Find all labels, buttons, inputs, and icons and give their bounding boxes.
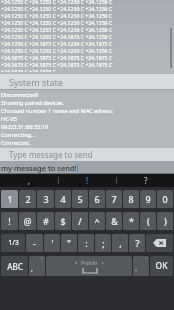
button[interactable]: 8 [123, 190, 139, 208]
button[interactable]: , [0, 174, 58, 187]
staticText: +24.1875 C +24.1875 C [1, 68, 56, 72]
staticText: $ [60, 215, 66, 227]
staticText: Showing paired devices. [1, 99, 65, 107]
staticText: Type message to send [9, 149, 93, 160]
button[interactable]: ; [95, 234, 111, 252]
staticText: 5 [77, 193, 83, 205]
button[interactable]: 4 [55, 190, 71, 208]
button[interactable]: 1 [1, 190, 18, 208]
staticText: 6 [94, 193, 100, 205]
button[interactable]: . [133, 256, 149, 276]
button[interactable]: OK [150, 256, 173, 276]
staticText: +24.1250 C +24.1250 C +24.1250 C +24.125… [1, 0, 113, 5]
button[interactable]: , [29, 256, 45, 276]
button[interactable]: ^ [89, 212, 105, 230]
button[interactable]: 0 [157, 190, 173, 208]
button[interactable]: ' [44, 234, 60, 252]
staticText: +24.1250 C +24.1250 C +24.1250 C +24.125… [1, 26, 113, 33]
staticText: ? [135, 237, 140, 249]
staticText: " [67, 237, 71, 249]
staticText: +24.1875 C +24.1875 C +24.1875 C +24.187… [1, 61, 113, 68]
button[interactable]: ? [117, 174, 174, 187]
staticText: & [111, 215, 118, 227]
staticText: +24.1250 C +24.1250 C +24.1250 C +24.125… [1, 12, 113, 19]
staticText: @ [23, 215, 32, 227]
staticText: Choosed number 1 name and MAC adress: [1, 107, 113, 115]
button[interactable]: - [26, 234, 43, 252]
staticText: , [31, 264, 33, 274]
staticText: +24.1250 C +24.1250 C +24.1250 C +24.125… [1, 19, 113, 26]
button[interactable]: # [37, 212, 54, 230]
staticText: : [85, 237, 88, 249]
button[interactable]: System state [0, 74, 174, 90]
button[interactable]: 3 [37, 190, 54, 208]
staticText: 0 [162, 193, 168, 205]
button[interactable]: 9 [140, 190, 156, 208]
staticText: +24.1250 C +24.1250 C +24.1875 C +24.125… [1, 33, 113, 40]
staticText: Connecting... [1, 131, 36, 139]
staticText: OK [155, 260, 168, 272]
staticText: ABC [7, 261, 23, 272]
staticText: 4 [60, 193, 66, 205]
button[interactable]: ! [1, 212, 18, 230]
staticText: 2 [25, 193, 31, 205]
button[interactable]: ABC [1, 256, 28, 276]
staticText: +24.1250 C +24.1875 C +24.1250 C +24.187… [1, 40, 113, 47]
staticText: 1 [7, 193, 13, 205]
staticText: # [43, 215, 49, 227]
staticText: 98:D3:31:B0:32:19 [1, 123, 49, 131]
staticText: 1/3 [8, 238, 19, 248]
button[interactable]: 2 [19, 190, 36, 208]
button[interactable]: 7 [106, 190, 122, 208]
staticText: . [135, 264, 137, 274]
staticText: HC-05 [1, 115, 17, 123]
staticText: / [78, 215, 82, 227]
staticText: ! [86, 175, 89, 186]
staticText: +24.1250 C +24.1250 C +24.1250 C +24.125… [1, 47, 113, 54]
button[interactable]: 5 [72, 190, 88, 208]
button[interactable]: " [61, 234, 77, 252]
staticText: ; [102, 237, 105, 249]
staticText: ( [147, 215, 150, 227]
button[interactable]: ( [140, 212, 156, 230]
staticText: * [129, 215, 134, 227]
button[interactable]: ? [129, 234, 145, 252]
staticText: , [119, 237, 122, 249]
staticText: Polski [81, 259, 98, 267]
staticText: Disconnected! [1, 91, 39, 99]
button[interactable]: $ [55, 212, 71, 230]
button[interactable]: ) [157, 212, 173, 230]
staticText: , [28, 175, 31, 186]
button[interactable]: 1/3 [1, 234, 25, 252]
button[interactable]: my message to send! [0, 162, 174, 173]
staticText: +24.1250 C +24.1250 C +24.1250 C +24.125… [1, 5, 113, 12]
button[interactable]: : [78, 234, 94, 252]
button[interactable]: 6 [89, 190, 105, 208]
staticText: ) [164, 215, 167, 227]
button[interactable]: * [123, 212, 139, 230]
button[interactable]: @ [19, 212, 36, 230]
staticText: - [33, 237, 36, 249]
staticText: Connected. [1, 139, 31, 147]
button[interactable]: , [112, 234, 128, 252]
staticText: ' [51, 237, 54, 249]
button[interactable]: & [106, 212, 122, 230]
staticText: ^ [94, 215, 100, 227]
button[interactable]: Backspace [146, 234, 173, 252]
staticText: 9 [145, 193, 151, 205]
staticText: System state [9, 76, 63, 88]
staticText: my message to send! [1, 163, 77, 173]
staticText: ! [8, 215, 11, 227]
button[interactable]: Space [46, 256, 132, 276]
staticText: ? [144, 175, 148, 186]
staticText: 3 [43, 193, 49, 205]
button[interactable]: Type message to send [0, 148, 174, 162]
button[interactable]: / [72, 212, 88, 230]
staticText: 8 [128, 193, 134, 205]
staticText: 7 [111, 193, 117, 205]
staticText: +24.1875 C +24.1875 C +24.1875 C +24.187… [1, 54, 113, 61]
button[interactable]: ! [59, 174, 116, 187]
